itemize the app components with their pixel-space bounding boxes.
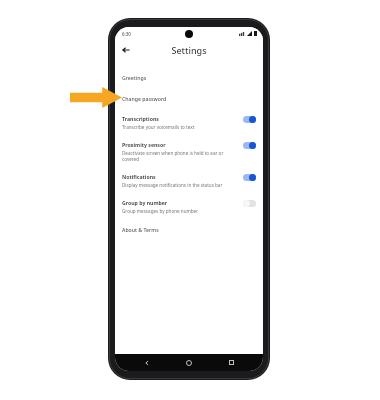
button[interactable]: Recent apps	[221, 354, 241, 371]
staticText: Transcribe your voicemails to text	[122, 124, 195, 130]
button[interactable]: About & Terms	[122, 219, 256, 240]
staticText: Proximity sensor	[122, 141, 166, 148]
staticText: Deactivate screen when phone is held to …	[122, 150, 237, 162]
staticText: Notifications	[122, 173, 156, 180]
button[interactable]: Back	[119, 43, 133, 57]
button[interactable]: Toggle off	[243, 200, 256, 207]
button[interactable]: Toggle on	[243, 174, 256, 181]
staticText: Greetings	[122, 74, 147, 81]
staticText: About & Terms	[122, 226, 159, 233]
button[interactable]: Notifications	[122, 173, 256, 188]
staticText: 6:30	[122, 31, 131, 37]
staticText: Display message notifications in the sta…	[122, 182, 223, 188]
other: Pointer to Change password	[70, 87, 122, 108]
button[interactable]: Transcriptions	[122, 115, 256, 130]
staticText: Transcriptions	[122, 115, 159, 122]
button[interactable]: Group by number	[122, 199, 256, 214]
button[interactable]: Toggle on	[243, 142, 256, 149]
staticText: Group messages by phone number	[122, 208, 199, 214]
button[interactable]: Home	[179, 354, 199, 371]
staticText: Group by number	[122, 199, 168, 206]
button[interactable]: Proximity sensor	[122, 141, 256, 162]
staticText: Change password	[122, 95, 167, 102]
button[interactable]: Greetings	[122, 67, 256, 88]
button[interactable]: Back	[137, 354, 157, 371]
staticText: Settings	[171, 44, 207, 56]
button[interactable]: Toggle on	[243, 116, 256, 123]
button[interactable]: Change password	[122, 88, 256, 109]
